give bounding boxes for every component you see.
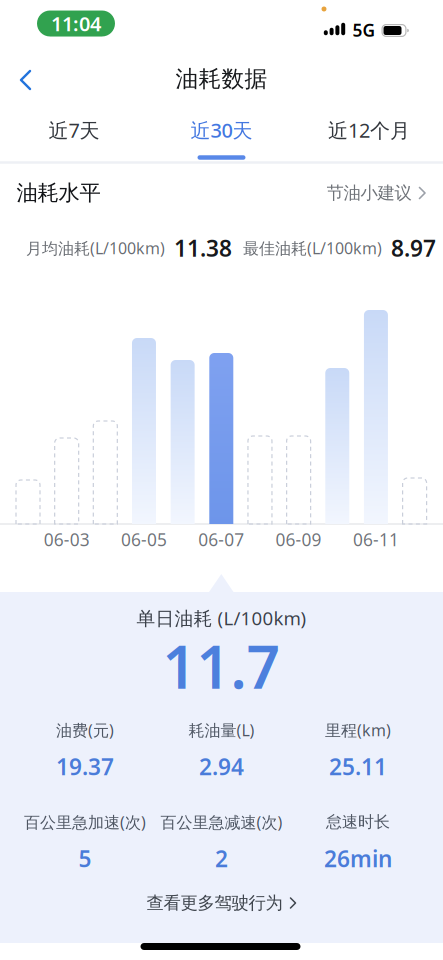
staticText: 06-03 — [44, 528, 90, 551]
staticText: 25.11 — [329, 751, 387, 781]
staticText: 06-07 — [198, 528, 244, 551]
staticText: 11.7 — [162, 627, 280, 705]
staticText: 11:04 — [51, 10, 101, 37]
staticText: 5G — [352, 18, 375, 41]
button[interactable]: 近7天 — [0, 106, 147, 154]
staticText: 5 — [78, 843, 91, 873]
staticText: 月均油耗(L/100km) — [26, 237, 165, 259]
staticText: 怠速时长 — [326, 812, 390, 832]
staticText: 近12个月 — [328, 117, 410, 143]
button[interactable]: 查看更多驾驶行为 — [146, 892, 296, 914]
staticText: 8.97 — [391, 233, 436, 263]
staticText: 油耗数据 — [175, 65, 267, 93]
staticText: 里程(km) — [325, 719, 391, 741]
button[interactable]: 近30天 — [148, 106, 295, 154]
staticText: 06-09 — [276, 528, 322, 551]
staticText: 06-05 — [121, 528, 167, 551]
staticText: 2.94 — [199, 751, 244, 781]
staticText: 油费(元) — [56, 719, 114, 741]
staticText: 19.37 — [56, 751, 114, 781]
button[interactable]: 06-07 — [209, 353, 233, 524]
staticText: 近30天 — [190, 117, 252, 143]
button[interactable]: 近12个月 — [295, 106, 442, 154]
staticText: 单日油耗 (L/100km) — [136, 606, 306, 630]
staticText: 2 — [215, 843, 228, 873]
staticText: 百公里急减速(次) — [160, 811, 282, 833]
staticText: 百公里急加速(次) — [24, 811, 146, 833]
staticText: 近7天 — [48, 117, 99, 143]
staticText: 11.38 — [174, 233, 232, 263]
staticText: 查看更多驾驶行为 — [146, 892, 282, 914]
staticText: 耗油量(L) — [188, 719, 254, 741]
button[interactable]: Back — [4, 67, 48, 93]
staticText: 最佳油耗(L/100km) — [243, 237, 382, 259]
staticText: 油耗水平 — [16, 180, 100, 206]
staticText: 节油小建议 — [326, 182, 411, 204]
staticText: 26min — [324, 843, 392, 873]
staticText: 06-11 — [353, 528, 399, 551]
button[interactable]: 节油小建议 — [326, 182, 426, 204]
